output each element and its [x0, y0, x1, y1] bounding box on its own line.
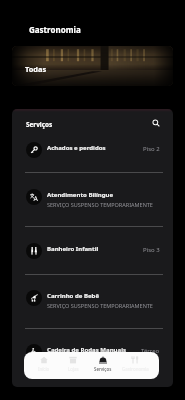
staticText: SERVIÇO SUSPENSO TEMPORARIAMENTE [47, 201, 153, 208]
button[interactable]: Início [29, 356, 59, 372]
button[interactable]: Search [149, 116, 163, 130]
button[interactable]: Lojas [58, 356, 88, 372]
staticText: Início [38, 366, 50, 372]
button[interactable]: Atendimento Bilíngue [12, 173, 173, 227]
staticText: Achados e perdidos [47, 144, 152, 152]
staticText: Gastronomia [122, 366, 149, 372]
button[interactable]: Banheiro Infantil [12, 227, 173, 274]
staticText: Gastronomia [29, 24, 81, 35]
button[interactable]: Serviços [88, 356, 118, 372]
staticText: Piso 2 [143, 145, 160, 153]
staticText: Térreo [141, 347, 160, 355]
staticText: Serviços [94, 366, 112, 372]
staticText: Cadeira de Rodas Manuais [47, 346, 152, 354]
staticText: Carrinho de Bebê [47, 292, 152, 300]
button[interactable]: Todas [12, 46, 173, 86]
button[interactable]: Carrinho de Bebê [12, 274, 173, 328]
staticText: SERVIÇO SUSPENSO TEMPORARIAMENTE [47, 302, 153, 309]
staticText: Banheiro Infantil [47, 245, 152, 253]
staticText: Todas [25, 64, 47, 74]
staticText: Lojas [68, 366, 79, 372]
staticText: Serviços [26, 120, 53, 129]
staticText: Atendimento Bilíngue [47, 191, 152, 199]
staticText: Piso 3 [143, 246, 160, 254]
button[interactable]: Achados e perdidos [12, 126, 173, 173]
button[interactable]: Cadeira de Rodas Manuais [12, 328, 173, 375]
button[interactable]: Gastronomia [120, 356, 150, 372]
